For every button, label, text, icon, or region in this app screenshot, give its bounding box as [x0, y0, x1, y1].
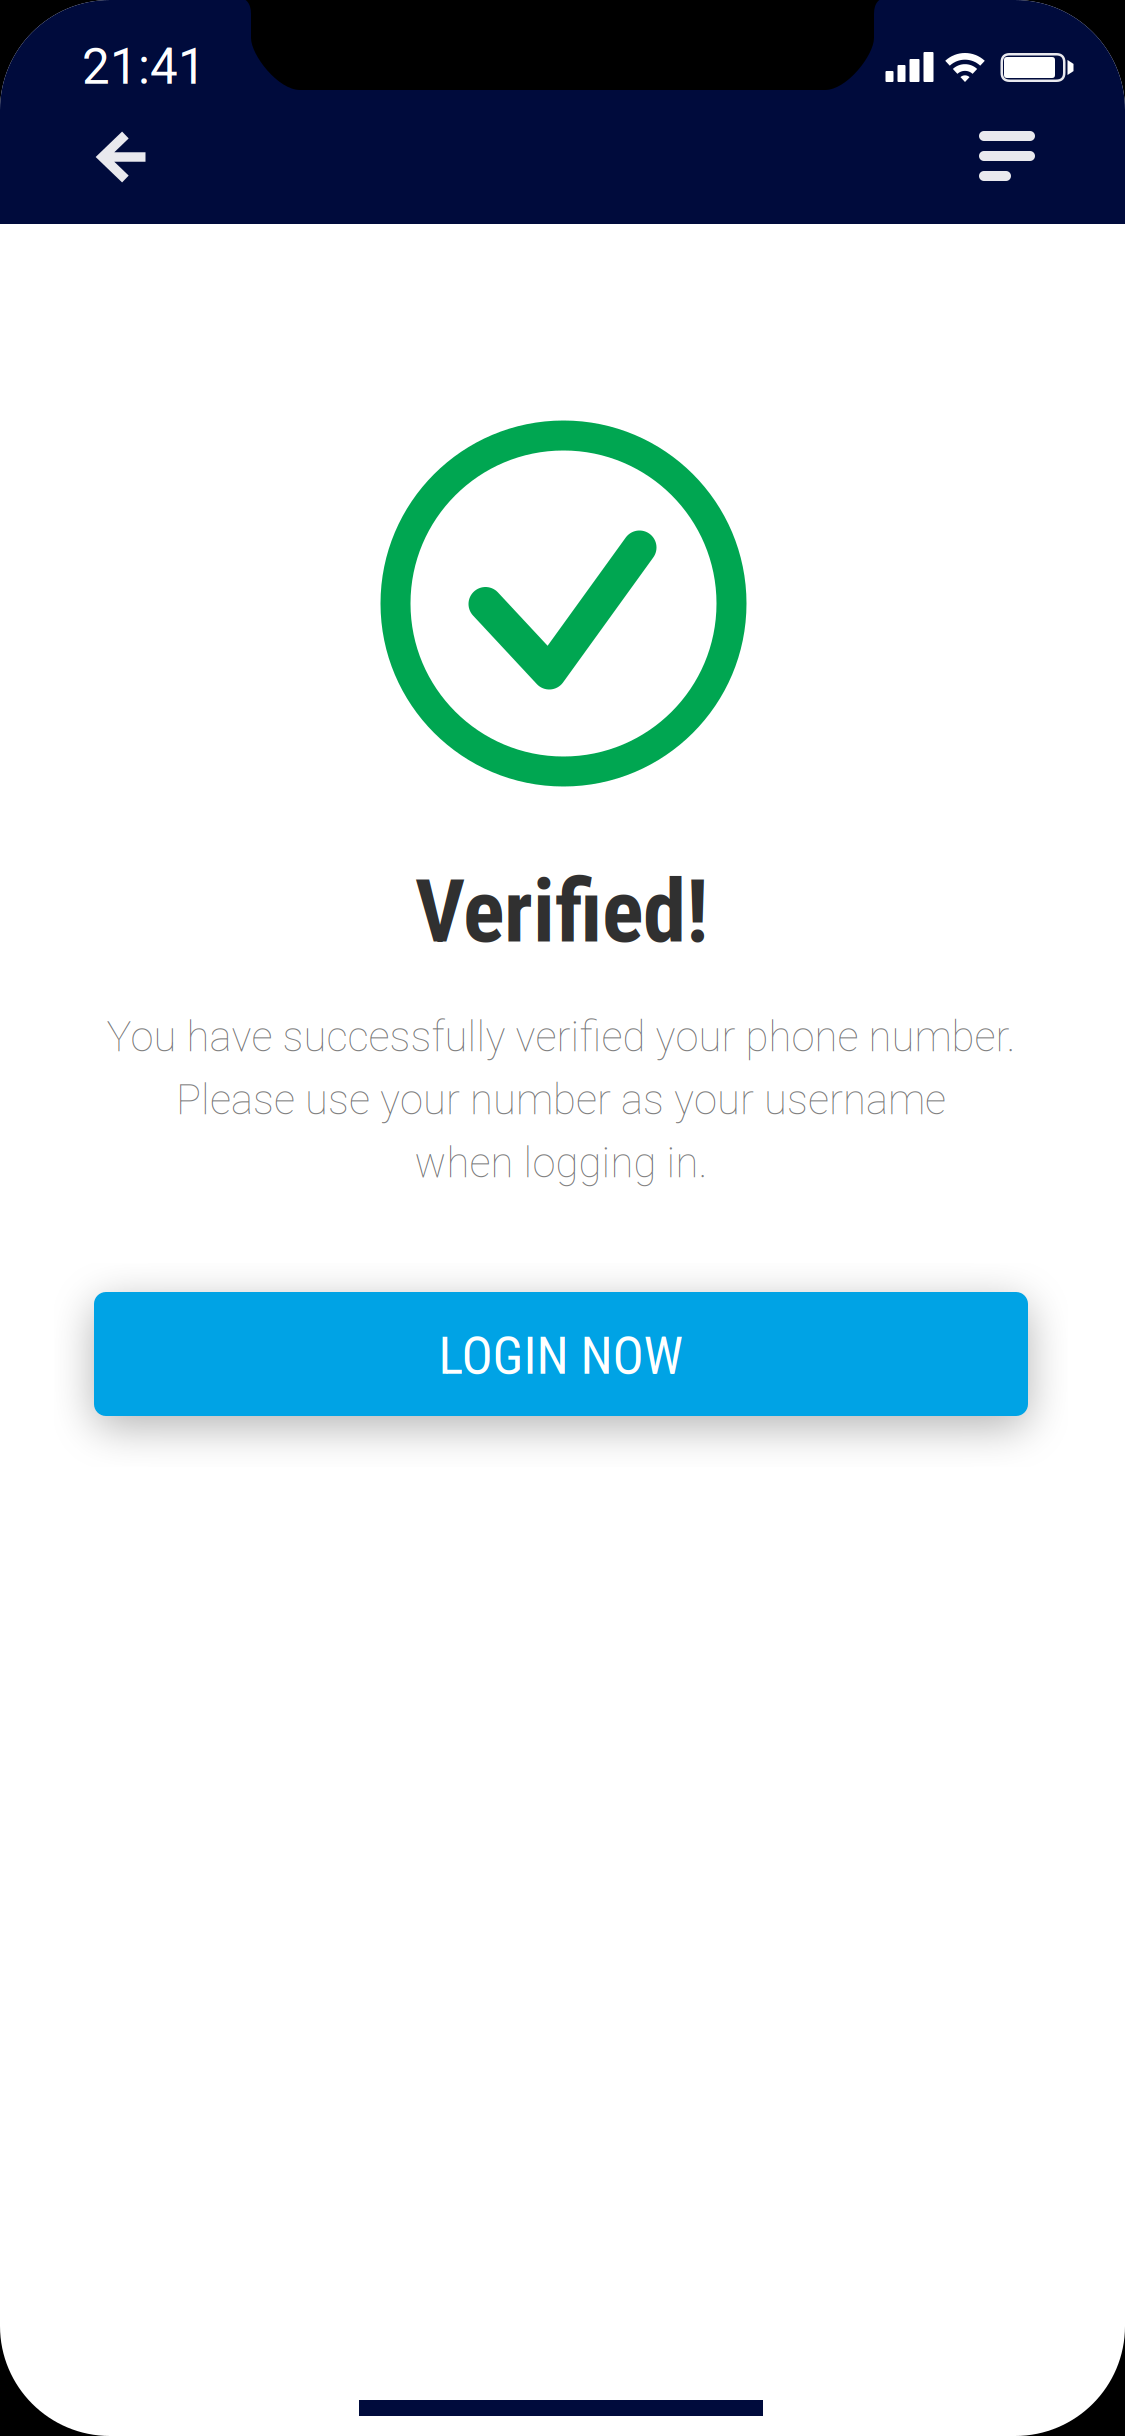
- button[interactable]: LOGIN NOW: [94, 1292, 1028, 1416]
- staticText: 21:41: [82, 38, 206, 96]
- staticText: Verified!: [415, 861, 709, 963]
- staticText: You have successfully verified your phon…: [106, 1013, 1015, 1061]
- button[interactable]: Menu: [945, 97, 1069, 215]
- staticText: Please use your number as your username: [176, 1075, 946, 1124]
- staticText: when logging in.: [414, 1138, 707, 1187]
- button[interactable]: Back: [68, 101, 179, 213]
- staticText: LOGIN NOW: [438, 1325, 683, 1386]
